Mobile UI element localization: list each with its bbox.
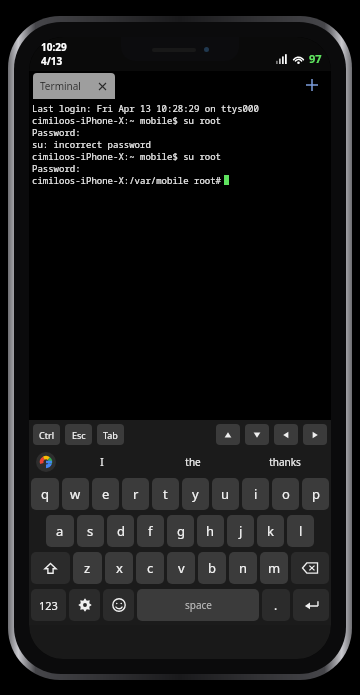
staticText: s [87, 522, 94, 540]
staticText: w [70, 485, 81, 503]
staticText: h [206, 522, 215, 540]
button[interactable]: l [287, 515, 314, 547]
staticText: the [185, 455, 201, 469]
staticText: m [268, 559, 281, 577]
button[interactable]: . [262, 589, 290, 621]
button[interactable]: g [167, 515, 194, 547]
button[interactable]: d [107, 515, 134, 547]
staticText: q [41, 485, 49, 503]
staticText: Password: [32, 162, 81, 174]
button[interactable]: v [167, 552, 195, 584]
staticText: k [267, 522, 274, 540]
staticText: x [116, 559, 123, 577]
button[interactable]: s [77, 515, 104, 547]
staticText: r [133, 485, 139, 503]
button[interactable]: thanks [239, 448, 331, 476]
staticText: thanks [269, 455, 301, 469]
staticText: c [147, 559, 154, 577]
staticText: I [100, 455, 104, 469]
staticText: 97 [309, 51, 322, 66]
button[interactable]: Ctrl [33, 424, 60, 445]
button[interactable]: b [198, 552, 226, 584]
staticText: i [254, 485, 258, 503]
staticText: 123 [39, 598, 58, 613]
staticText: Terminal [40, 79, 81, 93]
staticText: Esc [72, 429, 86, 441]
button[interactable]: the [147, 448, 239, 476]
staticText: Password: [32, 126, 81, 138]
staticText: y [192, 485, 199, 503]
staticText: z [84, 559, 91, 577]
staticText: g [177, 522, 185, 540]
button[interactable]: Arrow down [245, 424, 269, 445]
button[interactable]: Tab [97, 424, 124, 445]
staticText: Ctrl [39, 429, 54, 441]
staticText: Last login: Fri Apr 13 10:28:29 on ttys0… [32, 102, 259, 114]
button[interactable]: i [242, 478, 269, 510]
button[interactable]: k [257, 515, 284, 547]
staticText: n [239, 559, 248, 577]
button[interactable]: h [197, 515, 224, 547]
button[interactable]: Arrow up [216, 424, 240, 445]
button[interactable]: o [272, 478, 299, 510]
staticText: a [56, 522, 64, 540]
button[interactable]: u [212, 478, 239, 510]
button[interactable]: Enter [293, 589, 329, 621]
button[interactable]: y [182, 478, 209, 510]
button[interactable]: Shift [31, 552, 70, 584]
button[interactable]: Close tab [96, 80, 108, 92]
button[interactable]: Esc [65, 424, 92, 445]
button[interactable]: x [105, 552, 133, 584]
staticText: d [117, 522, 125, 540]
staticText: b [208, 559, 216, 577]
button[interactable]: c [136, 552, 164, 584]
button[interactable]: 123 [31, 589, 66, 621]
staticText: . [274, 597, 278, 613]
button[interactable]: Arrow right [303, 424, 327, 445]
staticText: cimiloos-iPhone-X:~ mobile$ su root [32, 114, 222, 126]
button[interactable]: space [137, 589, 259, 621]
staticText: e [102, 485, 110, 503]
button[interactable]: f [137, 515, 164, 547]
button[interactable]: e [92, 478, 119, 510]
staticText: j [239, 522, 243, 540]
button[interactable]: Keyboard settings [69, 589, 100, 621]
staticText: cimiloos-iPhone-X:/var/mobile root# [32, 174, 222, 186]
staticText: p [312, 485, 320, 503]
button[interactable]: p [302, 478, 329, 510]
staticText: space [185, 598, 212, 612]
button[interactable]: z [73, 552, 102, 584]
button[interactable]: a [46, 515, 74, 547]
staticText: su: incorrect password [32, 138, 151, 150]
button[interactable]: q [31, 478, 59, 510]
button[interactable]: Backspace [291, 552, 329, 584]
button[interactable]: I [56, 448, 147, 476]
staticText: v [178, 559, 185, 577]
staticText: o [282, 485, 290, 503]
staticText: 4/13 [41, 54, 63, 68]
staticText: u [221, 485, 230, 503]
button[interactable]: t [152, 478, 179, 510]
staticText: Tab [103, 429, 118, 441]
staticText: t [163, 485, 168, 503]
button[interactable]: Emoji [103, 589, 134, 621]
button[interactable]: r [122, 478, 149, 510]
button[interactable]: n [229, 552, 257, 584]
button[interactable]: Google [36, 452, 56, 472]
button[interactable]: New tab [301, 74, 323, 96]
button[interactable]: Arrow left [274, 424, 298, 445]
staticText: 10:29 [41, 40, 67, 54]
button[interactable]: j [227, 515, 254, 547]
button[interactable]: w [62, 478, 89, 510]
staticText: f [148, 522, 153, 540]
staticText: cimiloos-iPhone-X:~ mobile$ su root [32, 150, 222, 162]
button[interactable]: Terminal [33, 73, 115, 99]
button[interactable]: m [260, 552, 288, 584]
staticText: l [299, 522, 303, 540]
